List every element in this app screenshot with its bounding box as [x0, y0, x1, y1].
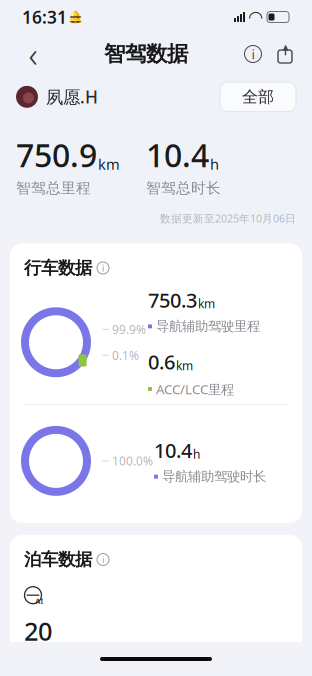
staticText: 全部 [242, 87, 274, 107]
staticText: AI [35, 597, 43, 606]
staticText: 智驾数据 [104, 41, 188, 67]
staticText: 0.1% [112, 347, 139, 363]
staticText: 智驾总里程 [16, 179, 91, 197]
staticText: 智驾总时长 [146, 179, 221, 197]
staticText: 99.9% [112, 321, 146, 337]
staticText: i [251, 45, 254, 63]
staticText: 导航辅助驾驶时长 [162, 468, 266, 485]
staticText: 20 [24, 614, 52, 648]
staticText: ▲ [282, 42, 288, 52]
staticText: ACC/LCC里程 [156, 380, 234, 398]
staticText: km [98, 154, 120, 174]
staticText: h [210, 154, 219, 174]
staticText: h [193, 446, 200, 462]
staticText: 100.0% [112, 453, 153, 469]
staticText: ‹ [28, 31, 37, 77]
staticText: 10.4 [146, 134, 209, 176]
staticText: 泊车数据 [24, 549, 92, 570]
staticText: i [102, 262, 104, 274]
staticText: 750.3 [148, 287, 197, 313]
button[interactable]: Information [242, 43, 264, 65]
staticText: ◠ [249, 7, 262, 27]
staticText: 数据更新至2025年10月06日 [160, 211, 296, 225]
staticText: 750.9 [16, 134, 97, 176]
staticText: 🔔 [68, 10, 83, 24]
staticText: 10.4 [154, 437, 192, 463]
staticText: 16:31 [22, 5, 67, 28]
staticText: km [176, 358, 193, 374]
button[interactable]: 全部 [220, 82, 296, 112]
staticText: 行车数据 [24, 257, 92, 279]
staticText: 夙愿.H [46, 85, 98, 108]
button[interactable]: Share [274, 43, 296, 65]
staticText: km [198, 296, 215, 312]
staticText: i [102, 553, 104, 566]
staticText: 0.6 [148, 349, 175, 375]
button[interactable]: Back [16, 37, 50, 71]
staticText: 导航辅助驾驶里程 [156, 318, 260, 335]
